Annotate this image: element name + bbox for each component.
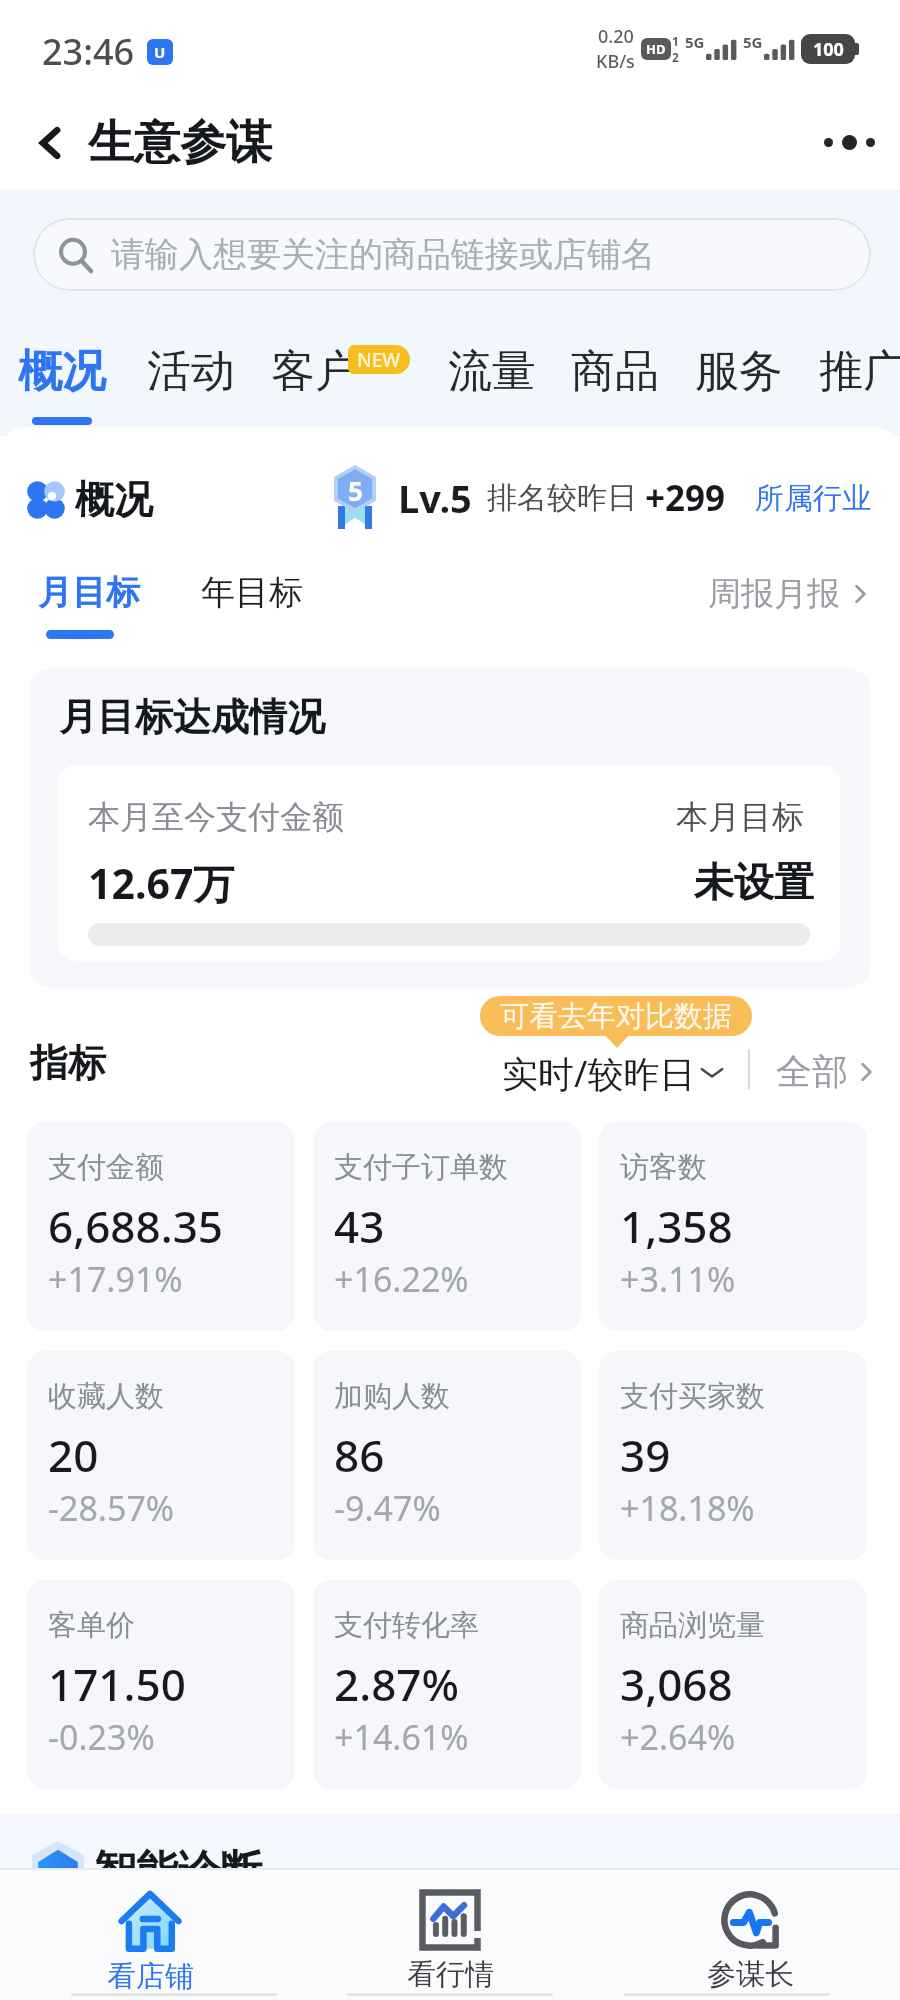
staticText: 实时/较昨日 [502,1049,696,1098]
button[interactable]: 客单价 [27,1580,295,1789]
staticText: 5G [685,32,705,52]
staticText: 排名较昨日 [487,479,637,517]
staticText: 商品 [571,344,659,399]
staticText: 概况 [75,475,153,524]
staticText: 1,358 [620,1196,733,1256]
staticText: 请输入想要关注的商品链接或店铺名 [111,233,655,276]
staticText: +16.22% [334,1256,469,1302]
button[interactable]: 商品浏览量 [599,1580,867,1789]
staticText: 本月目标 [676,797,804,837]
other: Back [32,126,66,160]
staticText: 5G [743,32,763,52]
staticText: 商品浏览量 [620,1607,765,1644]
staticText: 全部 [776,1049,848,1094]
button[interactable]: More options [810,95,889,190]
staticText: 23:46 [42,27,135,76]
button[interactable]: 年目标 [196,566,308,619]
button[interactable]: 看行情 [300,1868,600,2000]
staticText: +18.18% [620,1485,755,1531]
button[interactable]: 支付转化率 [313,1580,581,1789]
button[interactable]: 请输入想要关注的商品链接或店铺名 [33,218,871,291]
staticText: 0.20 [598,24,634,49]
staticText: 支付转化率 [334,1607,479,1644]
button[interactable]: 访客数 [599,1122,867,1331]
staticText: 参谋长 [707,1956,794,1993]
staticText: 客户 [271,344,359,399]
staticText: +14.61% [334,1714,469,1760]
staticText: 支付金额 [48,1149,164,1186]
staticText: 可看去年对比数据 [500,998,732,1035]
staticText: 20 [48,1425,99,1485]
staticText: 服务 [695,344,783,399]
button[interactable]: 全部 [772,1045,882,1098]
staticText: 100 [813,37,844,62]
button[interactable]: 推广 [807,339,900,404]
staticText: 12.67万 [88,855,235,911]
staticText: 5 [348,473,363,508]
staticText: 生意参谋 [88,114,272,172]
button[interactable]: 活动 [135,339,247,404]
staticText: 概况 [18,344,106,399]
staticText: 2 [672,49,679,65]
staticText: 月目标达成情况 [59,693,325,741]
button[interactable]: 服务 [683,339,795,404]
staticText: +17.91% [48,1256,183,1302]
staticText: 指标 [30,1039,106,1087]
staticText: 流量 [448,344,536,399]
button[interactable]: 支付买家数 [599,1351,867,1560]
button[interactable]: 支付金额 [27,1122,295,1331]
staticText: 收藏人数 [48,1378,164,1415]
staticText: 推广 [819,344,900,399]
staticText: 访客数 [620,1149,707,1186]
staticText: 智能诊断 [94,1845,262,1898]
staticText: 2.87% [334,1654,459,1714]
button[interactable]: 智能诊断 [0,1815,900,1870]
staticText: +2.64% [620,1714,736,1760]
staticText: 43 [334,1196,385,1256]
staticText: U [154,42,166,62]
staticText: 客单价 [48,1607,135,1644]
staticText: 支付子订单数 [334,1149,508,1186]
staticText: +299 [645,474,726,522]
button[interactable]: 流量 [436,339,548,404]
staticText: 6,688.35 [48,1196,223,1256]
staticText: 39 [620,1425,671,1485]
button[interactable]: Back [16,95,288,190]
staticText: 活动 [147,344,235,399]
button[interactable]: 支付子订单数 [313,1122,581,1331]
staticText: 看行情 [407,1956,494,1993]
staticText: 看店铺 [107,1958,194,1995]
button[interactable]: 商品 [559,339,671,404]
staticText: 所属行业 [755,480,871,517]
staticText: 1 [672,33,679,49]
button[interactable]: 看店铺 [0,1868,300,2000]
staticText: 3,068 [620,1654,733,1714]
staticText: HD [646,40,666,58]
staticText: 月目标 [38,571,140,614]
staticText: 171.50 [48,1654,186,1714]
button[interactable]: 参谋长 [600,1868,900,2000]
staticText: KB/s [596,49,635,74]
button[interactable]: 月目标 [33,566,145,619]
staticText: +3.11% [620,1256,736,1302]
staticText: 加购人数 [334,1378,450,1415]
staticText: -0.23% [48,1714,155,1760]
staticText: 未设置 [694,857,814,907]
staticText: NEW [357,347,401,373]
staticText: 周报月报 [708,573,840,615]
staticText: 支付买家数 [620,1378,765,1415]
staticText: -28.57% [48,1485,175,1531]
button[interactable]: 概况 [6,339,118,404]
staticText: Lv.5 [398,472,472,524]
staticText: 年目标 [201,571,303,614]
button[interactable]: 周报月报 [702,567,878,621]
button[interactable]: 客户 [259,339,371,404]
staticText: 86 [334,1425,385,1485]
button[interactable]: 所属行业 [749,474,877,523]
button[interactable]: 收藏人数 [27,1351,295,1560]
button[interactable]: 加购人数 [313,1351,581,1560]
button[interactable]: 实时/较昨日 [498,1045,730,1102]
staticText: 本月至今支付金额 [88,797,344,837]
staticText: -9.47% [334,1485,441,1531]
